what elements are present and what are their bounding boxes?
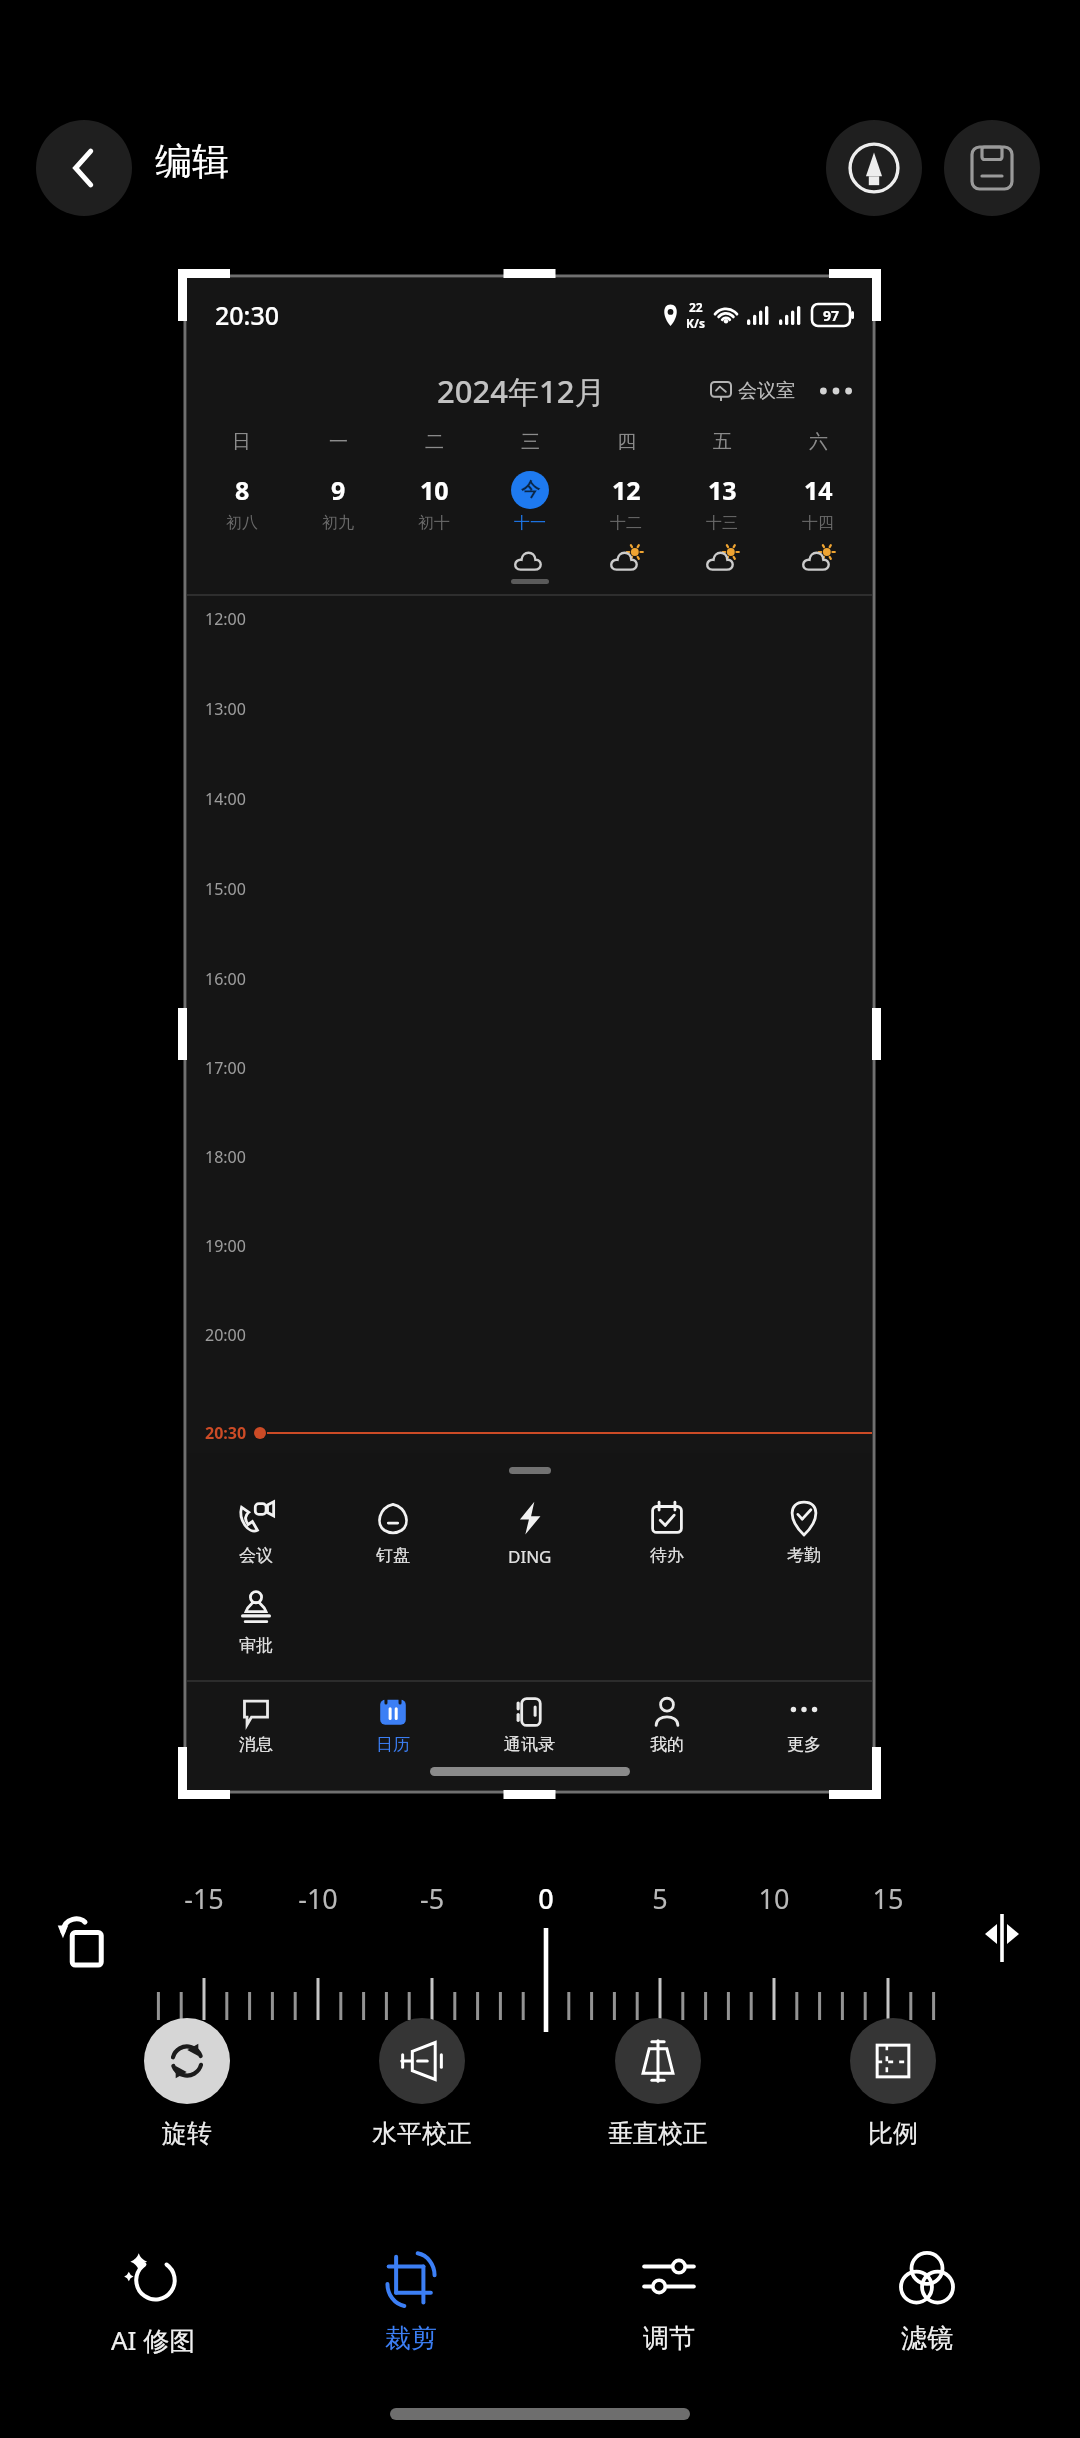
staticText: 9 (331, 473, 346, 507)
button[interactable]: 消息 (187, 1696, 324, 1755)
staticText: 会议 (239, 1545, 273, 1566)
staticText: 待办 (650, 1545, 684, 1566)
staticText: 15:00 (205, 878, 246, 900)
staticText: 会议室 (738, 379, 795, 403)
staticText: 滤镜 (901, 2322, 953, 2355)
staticText: 钉盘 (376, 1545, 410, 1566)
staticText: 六 (809, 430, 828, 454)
staticText: 一 (329, 430, 348, 454)
button[interactable]: AI 修图 (48, 2248, 258, 2358)
staticText: 0 (511, 1880, 581, 1917)
staticText: 10 (420, 473, 449, 507)
staticText: 14 (804, 473, 833, 507)
button[interactable]: 滤镜 (822, 2248, 1032, 2355)
button[interactable]: Save (944, 120, 1040, 216)
button[interactable]: 8 (193, 471, 290, 533)
button[interactable]: Brush (826, 120, 922, 216)
button[interactable]: 会议室 (708, 376, 798, 406)
staticText: -15 (169, 1880, 239, 1917)
button[interactable]: 旋转 (122, 2018, 252, 2149)
staticText: 水平校正 (372, 2118, 472, 2149)
staticText: DING (508, 1545, 552, 1568)
button[interactable]: 裁剪 (306, 2248, 516, 2355)
staticText: 二 (425, 430, 444, 454)
staticText: 消息 (239, 1734, 273, 1755)
staticText: K/s (686, 315, 705, 331)
staticText: 17:00 (205, 1057, 246, 1079)
staticText: AI 修图 (111, 2322, 196, 2358)
staticText: 18:00 (205, 1146, 246, 1168)
staticText: 四 (617, 430, 636, 454)
button[interactable]: 垂直校正 (593, 2018, 723, 2149)
button[interactable]: 水平校正 (357, 2018, 487, 2149)
staticText: 垂直校正 (608, 2118, 708, 2149)
button[interactable]: 审批 (187, 1590, 324, 1656)
staticText: 12 (612, 473, 641, 507)
staticText: 我的 (650, 1734, 684, 1755)
staticText: 裁剪 (385, 2322, 437, 2355)
staticText: 12:00 (205, 608, 246, 630)
staticText: 比例 (868, 2118, 918, 2149)
staticText: 19:00 (205, 1235, 246, 1257)
staticText: 通讯录 (504, 1734, 555, 1755)
staticText: 今 (521, 478, 540, 502)
staticText: 15 (853, 1880, 923, 1917)
staticText: 8 (235, 473, 250, 507)
button[interactable]: 更多 (735, 1696, 872, 1755)
staticText: 20:30 (215, 298, 280, 332)
button[interactable]: 9 (290, 471, 386, 533)
staticText: 五 (713, 430, 732, 454)
staticText: 日 (232, 430, 251, 454)
staticText: 三 (521, 430, 540, 454)
button[interactable]: 钉盘 (324, 1500, 461, 1566)
staticText: -5 (397, 1880, 467, 1917)
staticText: 十二 (610, 513, 642, 533)
button[interactable]: Back (36, 120, 132, 216)
button[interactable]: 调节 (564, 2248, 774, 2355)
staticText: 调节 (643, 2322, 695, 2355)
button[interactable]: 待办 (598, 1500, 735, 1566)
button[interactable]: 会议 (187, 1500, 324, 1566)
staticText: 考勤 (787, 1545, 821, 1566)
staticText: 日历 (376, 1734, 410, 1755)
staticText: 十四 (802, 513, 834, 533)
button[interactable]: 13 (674, 471, 770, 533)
button[interactable]: 今 (482, 471, 578, 533)
button[interactable]: Mirror (952, 1888, 1052, 1988)
staticText: 20:30 (205, 1422, 247, 1444)
button[interactable]: 14 (770, 471, 866, 533)
staticText: -10 (283, 1880, 353, 1917)
staticText: 16:00 (205, 968, 246, 990)
staticText: 97 (823, 306, 840, 325)
staticText: 十一 (514, 513, 546, 533)
button[interactable]: 通讯录 (461, 1696, 598, 1755)
staticText: 十三 (706, 513, 738, 533)
button[interactable]: Rotate left (30, 1888, 140, 1998)
staticText: 10 (739, 1880, 809, 1917)
staticText: 初九 (322, 513, 354, 533)
staticText: 初八 (226, 513, 258, 533)
staticText: 14:00 (205, 788, 246, 810)
button[interactable]: More options (816, 371, 856, 411)
staticText: 5 (625, 1880, 695, 1917)
staticText: 22 (689, 299, 703, 315)
staticText: 审批 (239, 1635, 273, 1656)
staticText: 旋转 (162, 2118, 212, 2149)
staticText: 编辑 (155, 138, 229, 185)
staticText: 13:00 (205, 698, 246, 720)
button[interactable]: 我的 (598, 1696, 735, 1755)
button[interactable]: 日历 (324, 1696, 461, 1755)
staticText: 2024年12月 (437, 370, 606, 412)
staticText: 13 (708, 473, 737, 507)
staticText: 初十 (418, 513, 450, 533)
button[interactable]: DING (461, 1500, 598, 1568)
staticText: 更多 (787, 1734, 821, 1755)
button[interactable]: 12 (578, 471, 674, 533)
button[interactable]: 10 (386, 471, 482, 533)
button[interactable]: 比例 (828, 2018, 958, 2149)
button[interactable]: 考勤 (735, 1500, 872, 1566)
staticText: 20:00 (205, 1324, 246, 1346)
